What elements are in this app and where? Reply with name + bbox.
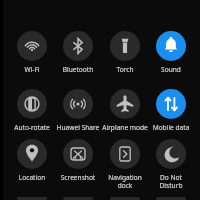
button[interactable]: Quick setting (63, 197, 93, 200)
button[interactable]: Bluetooth (55, 31, 101, 74)
staticText: Sound (148, 65, 194, 74)
button[interactable]: Auto-rotate (9, 89, 55, 132)
staticText: Screenshot (55, 173, 101, 182)
button[interactable]: Navigation dock (102, 139, 148, 190)
button[interactable]: Mobile data (148, 89, 194, 132)
staticText: Wi-Fi (9, 65, 55, 74)
staticText: Auto-rotate (9, 123, 55, 132)
staticText: Torch (102, 65, 148, 74)
button[interactable]: Screenshot (55, 139, 101, 182)
staticText: Location (9, 173, 55, 182)
button[interactable]: Quick setting (110, 197, 140, 200)
staticText: Huawei Share (55, 123, 101, 132)
button[interactable]: Quick setting (17, 197, 47, 200)
button[interactable]: Do Not Disturb (148, 139, 194, 190)
staticText: Do Not Disturb (148, 173, 194, 190)
button[interactable]: Huawei Share (55, 89, 101, 132)
staticText: Mobile data (148, 123, 194, 132)
button[interactable]: Quick setting (156, 197, 186, 200)
button[interactable]: Sound (148, 31, 194, 74)
staticText: Navigation dock (102, 173, 148, 190)
button[interactable]: Torch (102, 31, 148, 74)
button[interactable]: Wi-Fi (9, 31, 55, 74)
button[interactable]: Location (9, 139, 55, 182)
button[interactable]: Airplane mode (102, 89, 148, 132)
staticText: Bluetooth (55, 65, 101, 74)
staticText: Airplane mode (102, 123, 148, 132)
